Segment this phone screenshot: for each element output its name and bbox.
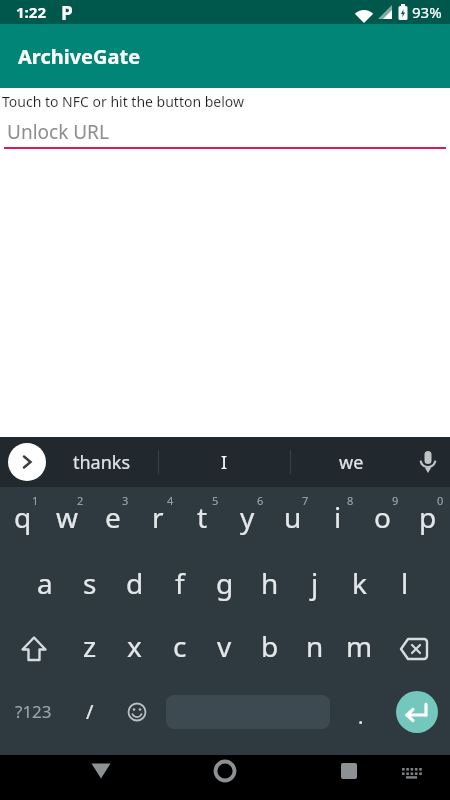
staticText: w: [56, 498, 79, 536]
button[interactable]: /: [67, 680, 112, 743]
staticText: o: [374, 498, 391, 536]
staticText: v: [217, 627, 232, 665]
staticText: i: [334, 498, 342, 536]
staticText: ?123: [15, 700, 52, 723]
button[interactable]: u: [270, 491, 315, 554]
button[interactable]: w: [45, 491, 90, 554]
button[interactable]: l: [382, 554, 427, 617]
staticText: k: [352, 564, 367, 602]
button[interactable]: m: [337, 617, 382, 680]
button[interactable]: n: [292, 617, 337, 680]
button[interactable]: z: [67, 617, 112, 680]
button[interactable]: p: [405, 491, 450, 554]
button[interactable]: [334, 756, 364, 786]
button[interactable]: i: [315, 491, 360, 554]
staticText: b: [261, 627, 279, 665]
staticText: 2: [77, 493, 84, 508]
staticText: t: [197, 498, 208, 536]
button[interactable]: .: [338, 680, 383, 743]
staticText: x: [127, 627, 142, 665]
staticText: 9: [392, 493, 399, 508]
button[interactable]: q: [0, 491, 45, 554]
staticText: 93%: [412, 2, 442, 22]
staticText: q: [14, 498, 32, 536]
button[interactable]: d: [112, 554, 157, 617]
button[interactable]: j: [292, 554, 337, 617]
staticText: 3: [122, 493, 129, 508]
staticText: 5: [212, 493, 219, 508]
staticText: s: [83, 564, 97, 602]
button[interactable]: Unlock URL: [0, 119, 450, 145]
button[interactable]: t: [180, 491, 225, 554]
button[interactable]: g: [202, 554, 247, 617]
button[interactable]: b: [247, 617, 292, 680]
button[interactable]: f: [157, 554, 202, 617]
staticText: .: [358, 703, 364, 730]
button[interactable]: c: [157, 617, 202, 680]
button[interactable]: o: [360, 491, 405, 554]
staticText: Unlock URL: [7, 119, 109, 145]
staticText: P: [61, 0, 73, 24]
button[interactable]: [210, 756, 240, 786]
staticText: a: [37, 564, 53, 602]
button[interactable]: k: [337, 554, 382, 617]
button[interactable]: r: [135, 491, 180, 554]
button[interactable]: y: [225, 491, 270, 554]
button[interactable]: h: [247, 554, 292, 617]
staticText: 7: [302, 493, 309, 508]
staticText: /: [86, 698, 94, 725]
button[interactable]: [0, 617, 67, 680]
staticText: d: [126, 564, 144, 602]
button[interactable]: x: [112, 617, 157, 680]
button[interactable]: ?123: [0, 680, 67, 743]
staticText: 4: [167, 493, 174, 508]
staticText: y: [240, 498, 255, 536]
button[interactable]: e: [90, 491, 135, 554]
staticText: 6: [257, 493, 264, 508]
staticText: r: [152, 498, 164, 536]
staticText: f: [175, 564, 185, 602]
staticText: thanks: [73, 450, 131, 475]
staticText: 0: [437, 493, 444, 508]
staticText: we: [339, 450, 364, 475]
staticText: g: [216, 564, 234, 602]
button[interactable]: [382, 617, 450, 680]
staticText: z: [83, 627, 97, 665]
button[interactable]: [8, 443, 46, 481]
button[interactable]: [383, 680, 450, 743]
staticText: I: [221, 450, 228, 475]
staticText: e: [105, 498, 121, 536]
button[interactable]: a: [22, 554, 67, 617]
staticText: 1:22: [16, 2, 46, 22]
staticText: l: [401, 564, 409, 602]
button[interactable]: [412, 437, 450, 487]
staticText: ArchiveGate: [18, 43, 141, 70]
staticText: 1: [32, 493, 39, 508]
staticText: j: [311, 564, 319, 602]
staticText: m: [346, 627, 373, 665]
button[interactable]: [157, 680, 338, 743]
button[interactable]: s: [67, 554, 112, 617]
button[interactable]: thanks: [46, 437, 158, 487]
staticText: h: [261, 564, 279, 602]
staticText: u: [284, 498, 302, 536]
button[interactable]: [396, 758, 426, 788]
button[interactable]: v: [202, 617, 247, 680]
staticText: p: [419, 498, 437, 536]
button[interactable]: I: [159, 437, 290, 487]
staticText: 8: [347, 493, 354, 508]
staticText: c: [173, 627, 187, 665]
staticText: Touch to NFC or hit the button below: [2, 92, 245, 111]
staticText: n: [306, 627, 324, 665]
button[interactable]: [86, 756, 116, 786]
button[interactable]: [112, 680, 157, 743]
button[interactable]: we: [291, 437, 412, 487]
